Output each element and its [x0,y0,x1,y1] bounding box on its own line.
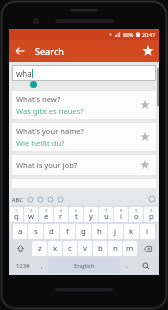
staticText: wha [16,68,32,79]
button[interactable]: j [108,224,123,239]
button[interactable]: 3 [39,207,53,222]
button[interactable]: v [78,241,92,256]
staticText: h [97,226,102,237]
staticText: i [120,211,123,222]
button[interactable]: wha [12,65,156,81]
staticText: What's new? [16,94,61,104]
button[interactable]: n [108,241,122,256]
staticText: English [74,262,95,270]
staticText: . [126,261,128,271]
staticText: 0 [150,208,153,214]
button[interactable]: 5 [69,207,83,222]
button[interactable]: s [28,224,43,239]
staticText: ABC [12,196,23,203]
staticText: g [81,226,86,237]
button[interactable]: Backspace [138,241,158,256]
button[interactable]: 0 [144,207,158,222]
button[interactable]: m [123,241,137,256]
staticText: b [98,243,103,254]
staticText: Was gibt es neues? [16,106,84,116]
button[interactable]: 9 [129,207,143,222]
staticText: 3 [45,208,48,214]
staticText: Wie heißt du? [16,138,65,148]
staticText: 2 [30,208,33,214]
button[interactable]: 8 [114,207,128,222]
button[interactable]: l [140,224,155,239]
staticText: 6 [90,208,93,214]
button[interactable]: English [48,258,120,273]
staticText: j [114,226,117,237]
button[interactable]: f [60,224,75,239]
button[interactable]: Add to favorites [138,158,152,172]
staticText: w [28,211,35,222]
button[interactable]: k [124,224,139,239]
staticText: What is your job? [16,160,78,170]
staticText: f [66,226,69,237]
button[interactable]: 6 [84,207,98,222]
button[interactable]: x [48,241,62,256]
staticText: s [34,226,38,237]
button[interactable]: ABC [12,196,23,203]
button[interactable]: d [44,224,59,239]
staticText: o [134,211,139,222]
button[interactable]: Back [9,40,31,62]
staticText: a [18,226,23,237]
staticText: y [89,211,93,222]
staticText: What's your name? [16,126,84,136]
button[interactable]: Add to favorites [138,98,152,112]
staticText: k [129,226,134,237]
button[interactable]: a [13,224,27,239]
staticText: 9 [135,208,138,214]
staticText: d [49,226,54,237]
staticText: 4 [60,208,63,214]
button[interactable]: Search [133,258,158,273]
button[interactable]: . [121,258,132,273]
staticText: 88% [123,31,134,38]
button[interactable]: , [36,258,47,273]
button[interactable]: 4 [54,207,68,222]
button[interactable]: Toolbar 1 [37,196,44,203]
staticText: c [68,243,72,254]
staticText: 1 [15,208,18,214]
staticText: 8 [120,208,123,214]
staticText: r [59,211,63,222]
staticText: v [83,243,87,254]
button[interactable]: Settings [148,195,156,203]
button[interactable]: Add to favorites [138,130,152,144]
staticText: 123# [16,262,30,270]
button[interactable]: Shift [10,241,31,256]
staticText: u [104,211,109,222]
staticText: 20:47 [142,31,156,38]
button[interactable]: b [93,241,107,256]
button[interactable]: h [92,224,107,239]
staticText: , [41,261,43,271]
staticText: e [44,211,49,222]
button[interactable]: Toolbar 3 [57,196,64,203]
staticText: m [126,243,134,254]
button[interactable]: Toolbar 0 [27,196,34,203]
staticText: 7 [105,208,108,214]
staticText: z [38,243,42,254]
button[interactable]: What is your job? [12,155,156,175]
button[interactable]: What's your name? [12,123,156,151]
staticText: l [146,226,149,237]
button[interactable]: g [76,224,91,239]
button[interactable]: 2 [24,207,38,222]
button[interactable]: z [32,241,47,256]
staticText: t [75,211,78,222]
button[interactable]: 7 [99,207,113,222]
button[interactable]: c [63,241,77,256]
staticText: p [149,211,154,222]
button[interactable]: What's new? [12,91,156,119]
staticText: q [14,211,19,222]
button[interactable]: 1 [10,207,23,222]
staticText: Search [35,45,64,57]
button[interactable]: 123# [10,258,35,273]
staticText: x [53,243,58,254]
button[interactable]: Favorites [137,40,159,62]
staticText: 5 [75,208,78,214]
staticText: n [113,243,118,254]
button[interactable]: Toolbar 2 [47,196,54,203]
